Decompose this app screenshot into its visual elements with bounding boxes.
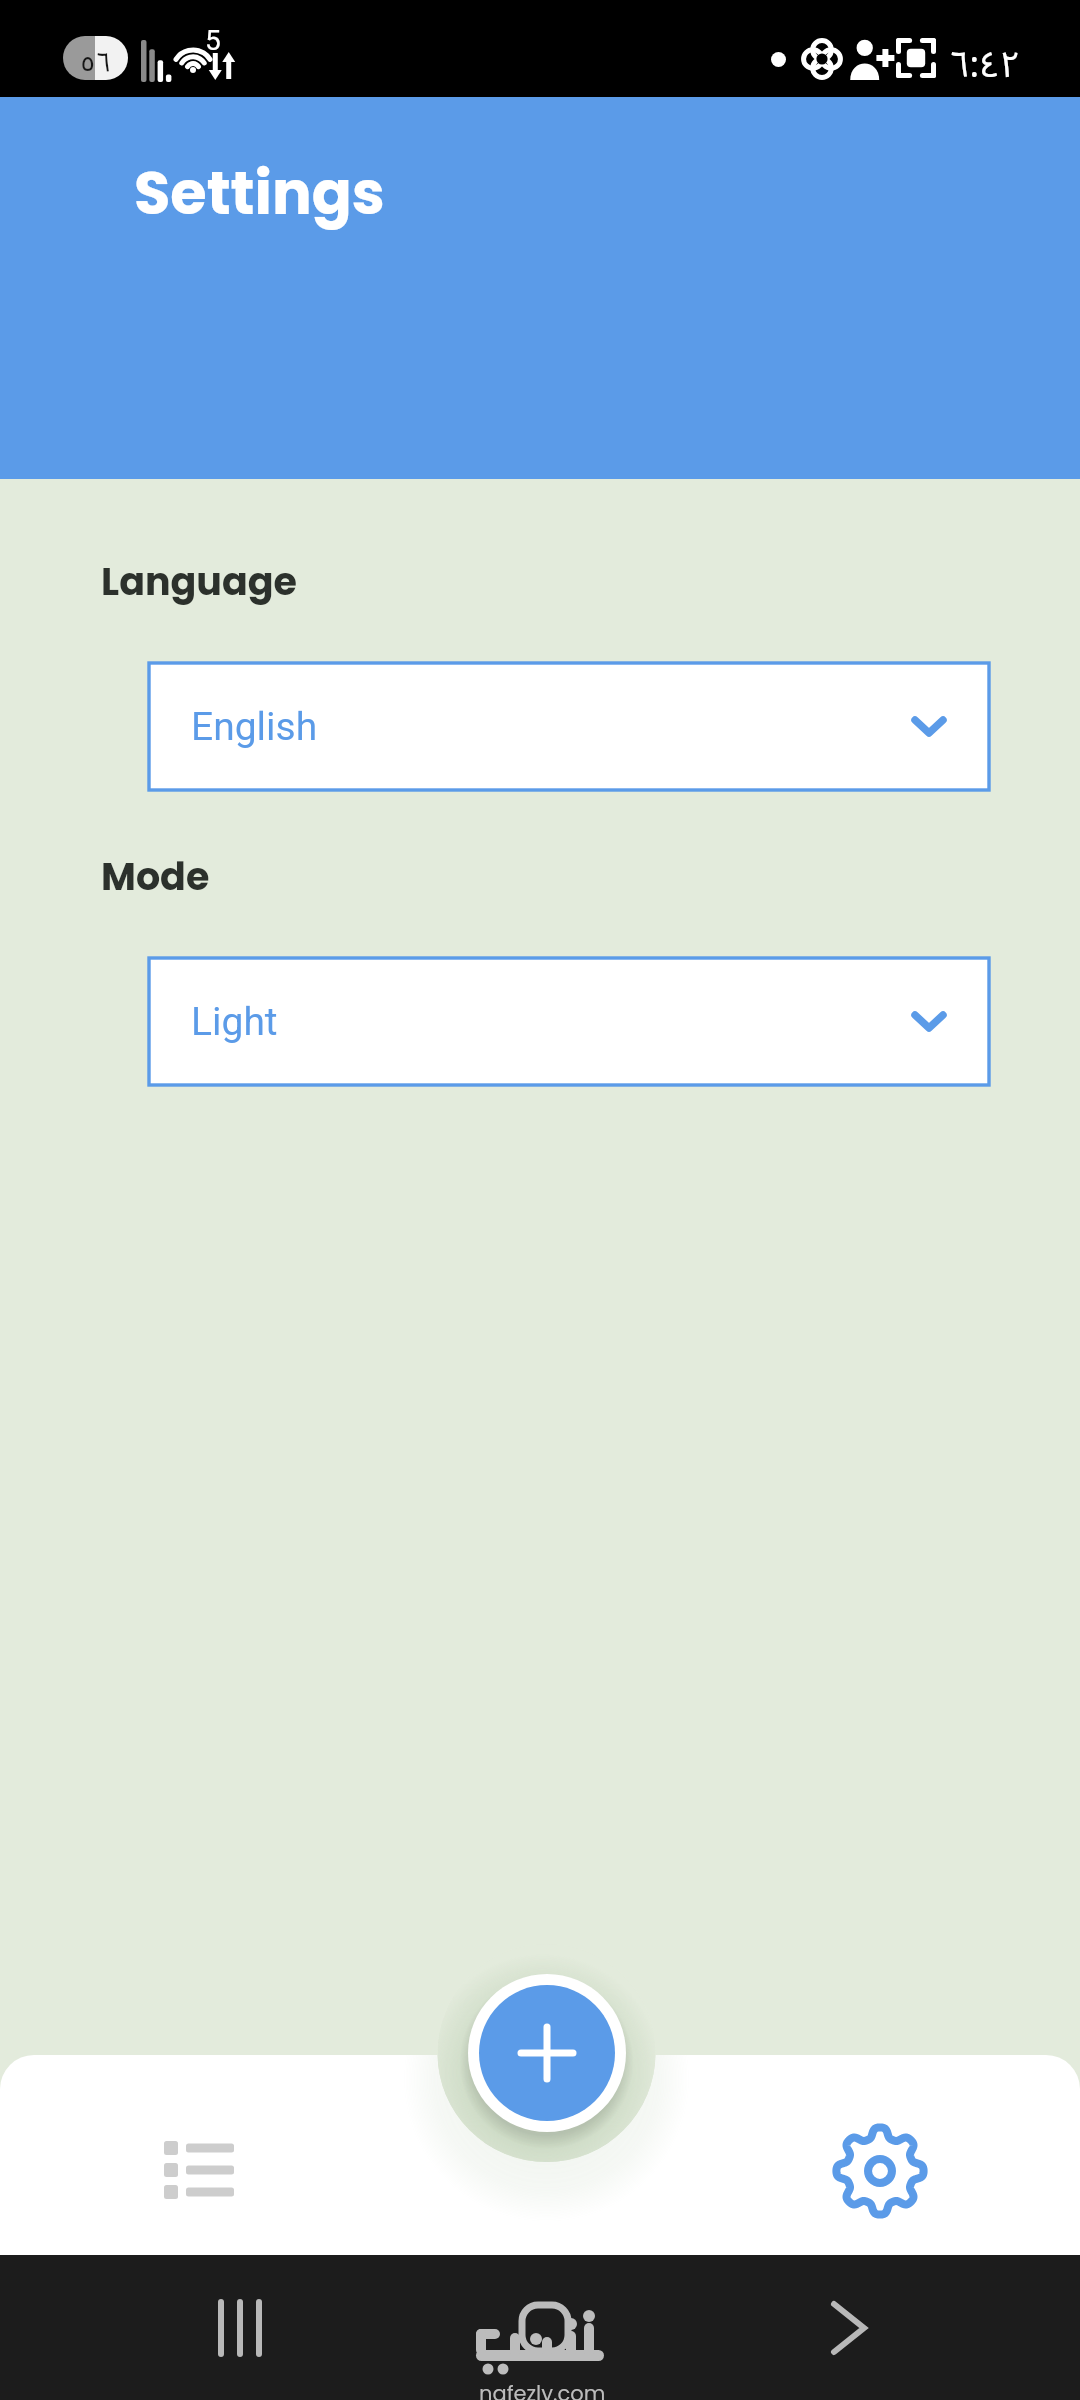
button[interactable]: Add <box>468 1974 626 2132</box>
staticText: English <box>191 704 318 750</box>
staticText: Settings <box>134 152 385 235</box>
button[interactable]: Light <box>149 958 989 1085</box>
staticText: ٦:٤٢ <box>949 28 1021 104</box>
staticText: 5 <box>205 24 221 57</box>
staticText: Mode <box>101 850 210 903</box>
staticText: ٥٦ <box>80 36 111 78</box>
staticText: nafezly.com <box>479 2379 606 2400</box>
staticText: Light <box>191 999 278 1045</box>
button[interactable]: List <box>121 2055 273 2255</box>
button[interactable]: English <box>149 663 989 790</box>
button[interactable]: Settings <box>804 2055 956 2255</box>
staticText: Language <box>101 555 297 608</box>
